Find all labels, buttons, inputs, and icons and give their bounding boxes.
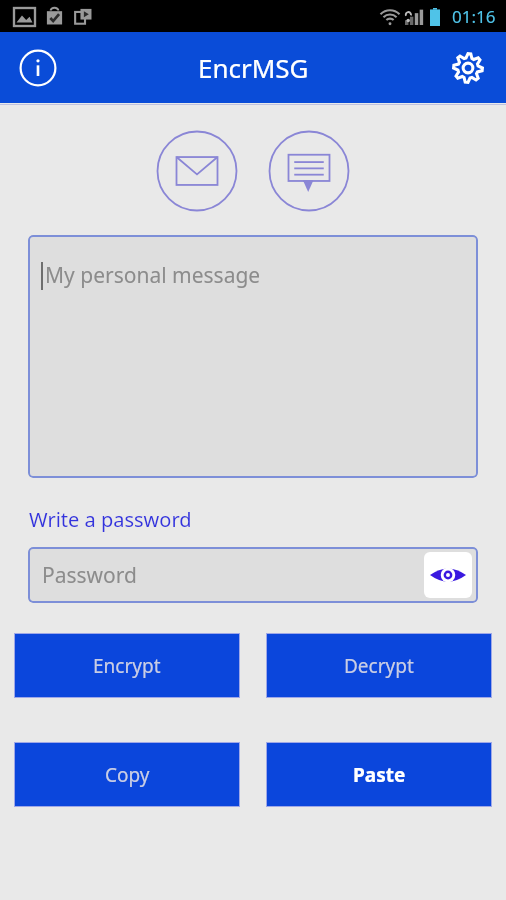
button[interactable]: Paste [266, 742, 492, 807]
button[interactable]: Encrypt [14, 633, 240, 698]
staticText: Paste [353, 762, 406, 788]
staticText: EncrMSG [198, 50, 309, 85]
staticText: Decrypt [344, 653, 414, 679]
button[interactable]: Decrypt [266, 633, 492, 698]
staticText: My personal message [45, 261, 261, 290]
button[interactable]: Show password [424, 552, 472, 598]
button[interactable]: Password [28, 547, 478, 603]
button[interactable]: Settings [442, 42, 494, 94]
staticText: Password [42, 561, 137, 590]
button[interactable]: Send by email [155, 129, 239, 213]
button[interactable]: Send by message [267, 129, 351, 213]
staticText: Encrypt [93, 653, 161, 679]
staticText: Write a password [29, 506, 192, 533]
staticText: Copy [105, 762, 150, 788]
button[interactable]: Copy [14, 742, 240, 807]
staticText: 01:16 [452, 5, 496, 28]
button[interactable]: Info [12, 42, 64, 94]
button[interactable]: My personal message [28, 235, 478, 478]
